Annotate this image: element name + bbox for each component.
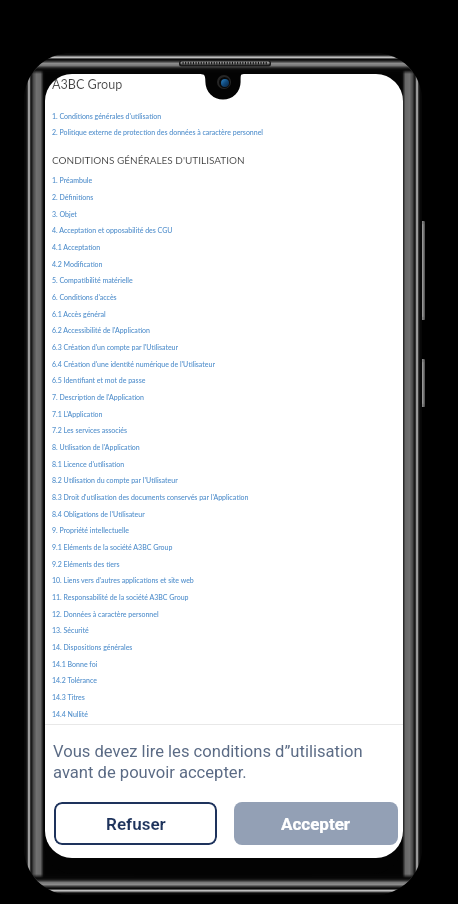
button[interactable]: 4.2 Modification	[52, 260, 103, 268]
staticText: 8. Utilisation de l'Application	[52, 443, 140, 451]
staticText: 14.3 Titres	[52, 693, 85, 701]
staticText: Refuser	[106, 814, 166, 834]
staticText: 3. Objet	[52, 210, 77, 218]
button[interactable]: 14.2 Tolérance	[52, 676, 97, 684]
button[interactable]: 4. Acceptation et opposabilité des CGU	[52, 226, 173, 234]
button[interactable]: 6.5 Identifiant et mot de passe	[52, 376, 146, 384]
staticText: 4. Acceptation et opposabilité des CGU	[52, 226, 173, 234]
staticText: 14. Dispositions générales	[52, 643, 133, 651]
staticText: 7.2 Les services associés	[52, 426, 128, 434]
button[interactable]: 8.1 Licence d'utilisation	[52, 460, 125, 468]
staticText: CONDITIONS GÉNÉRALES D'UTILISATION	[52, 154, 245, 166]
staticText: 13. Sécurité	[52, 626, 89, 634]
staticText: 4.2 Modification	[52, 260, 103, 268]
staticText: 1. Préambule	[52, 176, 93, 184]
button[interactable]: 7.1 L'Application	[52, 410, 103, 418]
button[interactable]: 14.3 Titres	[52, 693, 85, 701]
button[interactable]: 12. Données à caractère personnel	[52, 610, 159, 618]
button[interactable]: 1. Préambule	[52, 176, 93, 184]
button[interactable]: 7.2 Les services associés	[52, 426, 128, 434]
staticText: 8.3 Droit d'utilisation des documents co…	[52, 493, 249, 501]
button[interactable]: 14.4 Nullité	[52, 710, 88, 718]
staticText: 5. Compatibilité matérielle	[52, 276, 133, 284]
button[interactable]: Refuser	[54, 802, 217, 845]
button[interactable]: 8. Utilisation de l'Application	[52, 443, 140, 451]
staticText: A3BC Group	[52, 77, 123, 92]
button[interactable]: 2. Définitions	[52, 193, 94, 201]
staticText: 6.3 Création d'un compte par l'Utilisate…	[52, 343, 179, 351]
staticText: 6.5 Identifiant et mot de passe	[52, 376, 146, 384]
button[interactable]: 14.1 Bonne foi	[52, 660, 98, 668]
button[interactable]: 9.2 Eléments des tiers	[52, 560, 120, 568]
staticText: 9.1 Eléments de la société A3BC Group	[52, 543, 173, 551]
button[interactable]: 14. Dispositions générales	[52, 643, 133, 651]
staticText: 2. Politique externe de protection des d…	[52, 128, 264, 136]
staticText: 14.1 Bonne foi	[52, 660, 98, 668]
staticText: 6.1 Accès général	[52, 310, 106, 318]
button[interactable]: 8.4 Obligations de l'Utilisateur	[52, 510, 145, 518]
staticText: 1. Conditions générales d'utilisation	[52, 112, 162, 120]
staticText: 9.2 Eléments des tiers	[52, 560, 120, 568]
button[interactable]: 6.2 Accessibilité de l'Application	[52, 326, 150, 334]
staticText: 7. Description de l'Application	[52, 393, 144, 401]
button[interactable]: 4.1 Acceptation	[52, 243, 101, 251]
button[interactable]: 6.3 Création d'un compte par l'Utilisate…	[52, 343, 179, 351]
staticText: Accepter	[281, 814, 351, 834]
staticText: 6.2 Accessibilité de l'Application	[52, 326, 150, 334]
staticText: 14.2 Tolérance	[52, 676, 97, 684]
staticText: 8.1 Licence d'utilisation	[52, 460, 125, 468]
staticText: 9. Propriété intellectuelle	[52, 526, 129, 534]
button[interactable]: 8.3 Droit d'utilisation des documents co…	[52, 493, 249, 501]
staticText: 14.4 Nullité	[52, 710, 88, 718]
button[interactable]: 2. Politique externe de protection des d…	[52, 128, 264, 136]
button[interactable]: 10. Liens vers d'autres applications et …	[52, 576, 194, 584]
button[interactable]: 6. Conditions d'accès	[52, 293, 117, 301]
button[interactable]: 13. Sécurité	[52, 626, 89, 634]
staticText: 2. Définitions	[52, 193, 94, 201]
button[interactable]: 9.1 Eléments de la société A3BC Group	[52, 543, 173, 551]
staticText: 4.1 Acceptation	[52, 243, 101, 251]
staticText: 6.4 Création d'une identité numérique de…	[52, 360, 215, 368]
staticText: Vous devez lire les conditions d”utilisa…	[53, 742, 363, 761]
button[interactable]: 5. Compatibilité matérielle	[52, 276, 133, 284]
button[interactable]: 7. Description de l'Application	[52, 393, 144, 401]
button[interactable]: Accepter	[234, 802, 398, 845]
button[interactable]: 6.4 Création d'une identité numérique de…	[52, 360, 215, 368]
button[interactable]: 3. Objet	[52, 210, 77, 218]
staticText: avant de pouvoir accepter.	[53, 763, 247, 782]
button[interactable]: 11. Responsabilité de la société A3BC Gr…	[52, 593, 189, 601]
staticText: 10. Liens vers d'autres applications et …	[52, 576, 194, 584]
button[interactable]: 8.2 Utilisation du compte par l'Utilisat…	[52, 476, 178, 484]
staticText: 6. Conditions d'accès	[52, 293, 117, 301]
button[interactable]: 1. Conditions générales d'utilisation	[52, 112, 162, 120]
staticText: 7.1 L'Application	[52, 410, 103, 418]
button[interactable]: 6.1 Accès général	[52, 310, 106, 318]
staticText: 12. Données à caractère personnel	[52, 610, 159, 618]
staticText: 8.4 Obligations de l'Utilisateur	[52, 510, 145, 518]
staticText: 11. Responsabilité de la société A3BC Gr…	[52, 593, 189, 601]
button[interactable]: 9. Propriété intellectuelle	[52, 526, 129, 534]
staticText: 8.2 Utilisation du compte par l'Utilisat…	[52, 476, 178, 484]
